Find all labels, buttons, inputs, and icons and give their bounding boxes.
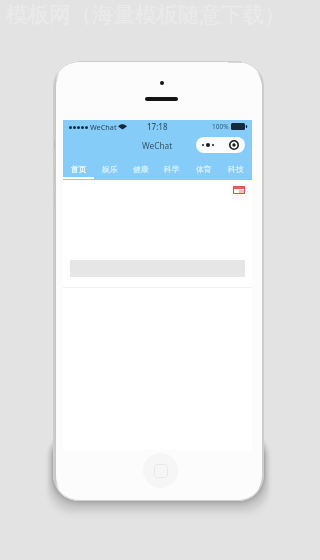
staticText: 17:18 [147,121,168,132]
staticText: WeChat [142,140,173,151]
staticText: 首页 [71,164,87,174]
button[interactable]: Home [143,453,178,488]
staticText: WeChat [90,122,117,132]
staticText: 娱乐 [102,164,118,174]
button[interactable]: 科技 [220,161,252,180]
button[interactable]: 娱乐 [94,161,125,180]
button[interactable]: Mini program menu [196,137,245,153]
staticText: 体育 [196,164,212,174]
button[interactable]: 健康 [125,161,156,180]
button[interactable]: 科学 [156,161,188,180]
staticText: 科技 [228,164,244,174]
staticText: 100% [212,122,229,131]
button[interactable]: 首页 [63,161,94,180]
button[interactable]: 体育 [188,161,220,180]
staticText: 健康 [133,164,149,174]
staticText: 科学 [164,164,180,174]
